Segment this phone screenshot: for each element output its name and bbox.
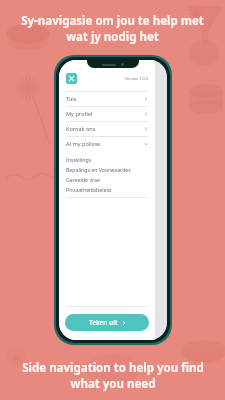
button[interactable]: Gereelde vrae xyxy=(66,174,155,184)
button[interactable]: Bepalings en Voorwaardes xyxy=(66,164,155,174)
staticText: Side navigation to help you find what yo… xyxy=(22,360,204,391)
button[interactable]: Instellings xyxy=(66,154,155,164)
staticText: Tuis xyxy=(66,95,77,103)
button[interactable]: Teken uit xyxy=(65,314,149,331)
staticText: Al my polisse xyxy=(66,140,101,148)
staticText: Kontak ons xyxy=(66,125,96,133)
staticText: My profiel xyxy=(66,110,93,118)
button[interactable]: Kontak ons xyxy=(59,121,155,136)
button[interactable]: Privaatheidsbeleid xyxy=(66,184,155,194)
staticText: Instellings xyxy=(66,156,92,163)
staticText: Sy-navigasie om jou te help met wat jy n… xyxy=(21,13,204,44)
staticText: Privaatheidsbeleid xyxy=(66,186,112,193)
button[interactable]: Tuis xyxy=(59,91,155,106)
staticText: Teken uit xyxy=(89,318,118,327)
button[interactable]: Close xyxy=(66,73,77,84)
button[interactable]: Al my polisse xyxy=(59,136,155,151)
button[interactable]: My profiel xyxy=(59,106,155,121)
staticText: Version 1.0.0 xyxy=(125,76,148,81)
staticText: Gereelde vrae xyxy=(66,176,100,183)
staticText: Bepalings en Voorwaardes xyxy=(66,166,131,173)
